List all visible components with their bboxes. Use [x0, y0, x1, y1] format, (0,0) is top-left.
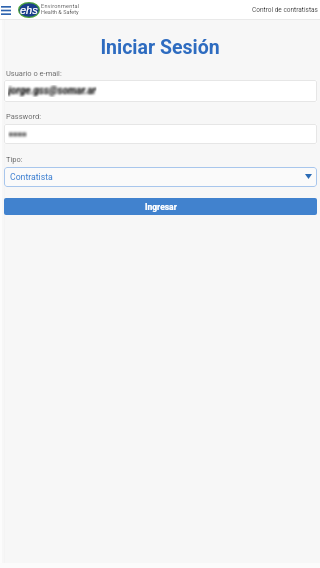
staticText: Control de contratistas: [252, 6, 318, 14]
staticText: jorge.gss@somar.ar: [8, 85, 96, 97]
button[interactable]: Ingresar: [4, 198, 317, 215]
button[interactable]: Open navigation menu: [0, 0, 14, 20]
button[interactable]: ••••: [4, 124, 317, 144]
staticText: Password:: [6, 112, 41, 121]
staticText: ••••: [9, 127, 28, 142]
staticText: jorge.gss@somar.ar: [9, 85, 97, 97]
staticText: Contratista: [10, 172, 53, 182]
staticText: ••••: [8, 127, 27, 142]
staticText: Iniciar Sesión: [0, 36, 320, 59]
staticText: Usuario o e-mail:: [6, 69, 62, 78]
staticText: Ingresar: [145, 202, 177, 212]
staticText: ehs: [20, 4, 38, 16]
staticText: Environmental: [41, 3, 80, 9]
staticText: Health & Safety: [41, 9, 79, 15]
staticText: Tipo:: [6, 155, 23, 164]
button[interactable]: Contratista: [4, 167, 317, 187]
button[interactable]: jorge.gss@somar.ar: [4, 80, 317, 102]
